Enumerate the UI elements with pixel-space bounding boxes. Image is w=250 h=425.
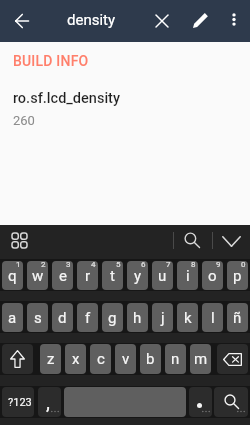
staticText: 0 [241,261,246,269]
button[interactable]: e [52,261,73,290]
button[interactable]: Space [64,387,186,417]
staticText: s [34,309,42,327]
staticText: , [46,390,50,413]
button[interactable]: Close [147,6,176,35]
staticText: y [134,267,142,285]
button[interactable]: Search [214,387,248,417]
button[interactable]: j [152,303,173,332]
staticText: t [110,267,115,285]
button[interactable]: Shift [2,344,33,374]
button[interactable]: w [27,261,48,290]
button[interactable]: Back [6,5,38,37]
button[interactable]: u [152,261,173,290]
staticText: ro.sf.lcd_density [13,90,120,107]
staticText: g [108,309,117,327]
button[interactable]: d [52,303,73,332]
staticText: m [194,350,208,368]
staticText: 8 [191,261,196,269]
button[interactable]: y [127,261,148,290]
staticText: 3 [66,261,71,269]
button[interactable]: i [177,261,198,290]
staticText: 9 [216,261,221,269]
staticText: 2 [41,261,46,269]
button[interactable]: Search [178,226,206,254]
button[interactable]: x [65,344,86,374]
staticText: i [186,267,190,285]
button[interactable]: t [102,261,123,290]
button[interactable]: k [177,303,198,332]
button[interactable]: p [227,261,248,290]
staticText: 5 [116,261,121,269]
button[interactable]: More options [220,6,247,33]
staticText: 4 [91,261,96,269]
button[interactable]: z [40,344,61,374]
button[interactable]: Clipboard [5,226,33,254]
button[interactable]: h [127,303,148,332]
button[interactable]: Period [189,387,212,417]
staticText: k [184,309,192,327]
staticText: c [97,350,105,368]
staticText: h [133,309,142,327]
staticText: l [211,309,215,327]
button[interactable]: f [77,303,98,332]
button[interactable]: v [115,344,136,374]
button[interactable]: q [2,261,23,290]
button[interactable]: c [90,344,111,374]
staticText: u [158,267,167,285]
staticText: ñ [233,309,242,327]
staticText: 7 [166,261,171,269]
staticText: n [171,350,180,368]
staticText: 6 [141,261,146,269]
button[interactable]: Comma [38,387,61,417]
button[interactable]: n [165,344,186,374]
button[interactable]: Backspace [217,344,248,374]
staticText: density [67,11,116,29]
button[interactable]: s [27,303,48,332]
button[interactable]: g [102,303,123,332]
button[interactable]: ñ [227,303,248,332]
button[interactable]: Edit [186,5,215,34]
staticText: a [8,309,17,327]
staticText: b [146,350,155,368]
staticText: o [208,267,217,285]
staticText: 1 [16,261,21,269]
staticText: 260 [13,113,35,128]
button[interactable]: o [202,261,223,290]
staticText: x [72,350,80,368]
staticText: e [59,267,67,285]
button[interactable]: b [140,344,161,374]
button[interactable]: r [77,261,98,290]
staticText: r [85,267,91,285]
button[interactable]: Hide keyboard [217,227,245,255]
staticText: j [161,309,165,327]
staticText: ?123 [8,396,32,409]
staticText: z [47,350,55,368]
button[interactable]: Symbols [2,387,34,417]
staticText: p [233,267,242,285]
staticText: w [32,267,44,285]
staticText: f [85,309,91,327]
staticText: v [122,350,130,368]
button[interactable]: l [202,303,223,332]
button[interactable]: a [2,303,23,332]
staticText: q [8,267,17,285]
staticText: d [58,309,67,327]
button[interactable]: m [190,344,211,374]
staticText: BUILD INFO [13,53,89,69]
